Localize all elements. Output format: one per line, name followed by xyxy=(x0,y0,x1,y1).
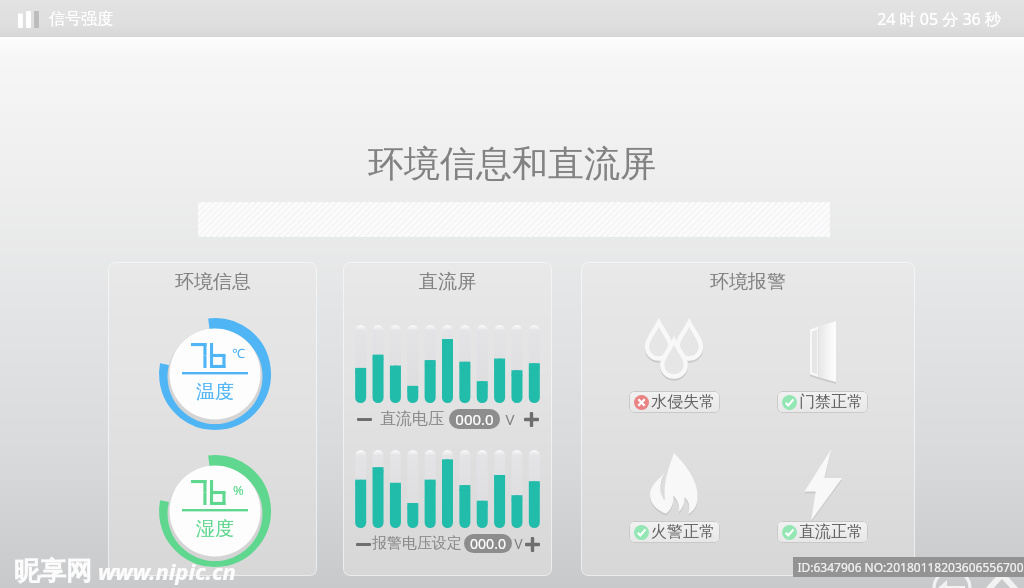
staticText: 直流正常 xyxy=(799,522,863,542)
button[interactable]: 火警正常 xyxy=(634,522,715,542)
staticText: 环境信息和直流屏 xyxy=(368,141,656,186)
staticText: V xyxy=(505,409,515,429)
staticText: 直流屏 xyxy=(419,270,476,294)
button[interactable]: 水侵失常 xyxy=(634,392,715,412)
button[interactable]: Increase xyxy=(523,535,541,553)
staticText: 门禁正常 xyxy=(799,392,863,412)
button[interactable]: Back xyxy=(930,564,970,588)
button[interactable]: Increase xyxy=(522,410,540,428)
staticText: 24 时 05 分 36 秒 xyxy=(877,8,1001,30)
staticText: www.nipic.cn xyxy=(98,556,236,586)
staticText: V xyxy=(514,534,523,553)
staticText: 昵享网 xyxy=(14,555,92,588)
staticText: 环境信息 xyxy=(175,270,251,294)
button[interactable]: Signal strength xyxy=(18,9,113,29)
staticText: 报警电压设定 xyxy=(372,534,462,553)
button[interactable]: 门禁正常 xyxy=(782,392,863,412)
staticText: 信号强度 xyxy=(49,9,113,29)
staticText: 温度 xyxy=(196,380,234,404)
staticText: 水侵失常 xyxy=(651,392,715,412)
staticText: 火警正常 xyxy=(651,522,715,542)
staticText: 000.0 xyxy=(470,534,506,553)
button[interactable]: Decrease xyxy=(355,410,373,428)
staticText: 直流电压 xyxy=(380,409,444,429)
staticText: ID:6347906 NO:20180118203606556700 xyxy=(797,559,1024,575)
button[interactable]: Decrease xyxy=(354,535,372,553)
staticText: 000.0 xyxy=(455,409,494,429)
button[interactable]: Home xyxy=(980,564,1020,588)
staticText: % xyxy=(233,481,244,499)
staticText: 湿度 xyxy=(196,517,234,541)
staticText: 环境报警 xyxy=(710,270,786,294)
button[interactable]: 直流正常 xyxy=(782,522,863,542)
staticText: ℃ xyxy=(232,344,245,362)
